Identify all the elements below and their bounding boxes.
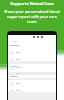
button[interactable] <box>8 81 56 86</box>
button[interactable] <box>8 88 56 93</box>
button[interactable] <box>8 50 56 55</box>
button[interactable] <box>8 65 56 70</box>
button[interactable] <box>8 71 56 76</box>
button[interactable] <box>8 57 56 62</box>
staticText: Supports Virtual Care <box>10 1 54 7</box>
staticText: Share your personalized blood sugar repo… <box>2 9 62 24</box>
